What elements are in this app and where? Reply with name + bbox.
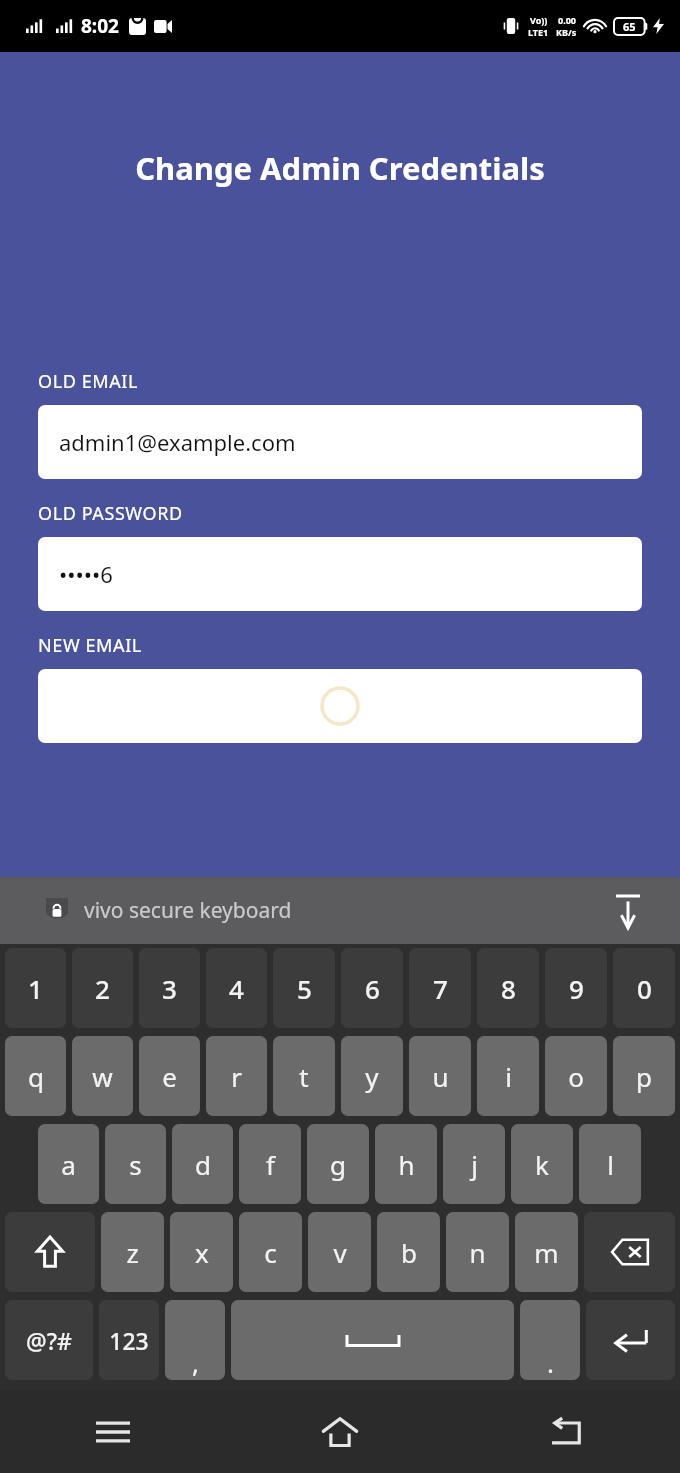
staticText: 4 [229, 971, 244, 1006]
button[interactable]: Hide keyboard [606, 889, 650, 933]
staticText: vivo secure keyboard [84, 896, 292, 925]
button[interactable]: Home [226, 1390, 453, 1473]
staticText: k [535, 1147, 549, 1182]
button[interactable]: 6 [341, 948, 403, 1028]
button[interactable]: . [520, 1300, 580, 1380]
button[interactable]: d [172, 1124, 233, 1204]
staticText: v [333, 1235, 347, 1270]
button[interactable]: l [579, 1124, 641, 1204]
staticText: m [534, 1235, 559, 1270]
staticText: 7 [433, 971, 448, 1006]
button[interactable]: 4 [206, 948, 267, 1028]
button[interactable]: 9 [545, 948, 607, 1028]
staticText: •••••6 [59, 559, 113, 589]
staticText: i [505, 1059, 512, 1094]
button[interactable]: e [139, 1036, 200, 1116]
staticText: Vo)) [530, 14, 548, 26]
button[interactable]: w [72, 1036, 133, 1116]
staticText: , [192, 1345, 199, 1380]
button[interactable]: x [170, 1212, 233, 1292]
button[interactable]: j [443, 1124, 505, 1204]
staticText: Change Admin Credentials [0, 147, 680, 189]
staticText: e [162, 1059, 177, 1094]
button[interactable]: k [511, 1124, 573, 1204]
staticText: a [61, 1147, 76, 1182]
button[interactable]: t [273, 1036, 335, 1116]
staticText: @?# [26, 1325, 72, 1356]
staticText: 8 [501, 971, 516, 1006]
button[interactable]: admin1@example.com [38, 405, 642, 479]
button[interactable]: z [101, 1212, 164, 1292]
staticText: 2 [95, 971, 110, 1006]
button[interactable]: 0 [613, 948, 675, 1028]
button[interactable]: 3 [139, 948, 200, 1028]
staticText: 5 [297, 971, 312, 1006]
staticText: 9 [569, 971, 584, 1006]
staticText: u [432, 1059, 449, 1094]
staticText: j [471, 1147, 478, 1182]
staticText: l [607, 1147, 614, 1182]
staticText: 0.00 [558, 14, 576, 26]
button[interactable]: Space [231, 1300, 514, 1380]
button[interactable]: Shift [5, 1212, 95, 1292]
button[interactable]: 7 [409, 948, 471, 1028]
staticText: 3 [162, 971, 177, 1006]
button[interactable]: @?# [5, 1300, 93, 1380]
button[interactable]: r [206, 1036, 267, 1116]
button[interactable]: Back [453, 1390, 680, 1473]
staticText: n [469, 1235, 486, 1270]
staticText: t [299, 1059, 309, 1094]
staticText: g [330, 1147, 346, 1182]
staticText: d [195, 1147, 211, 1182]
button[interactable]: p [613, 1036, 675, 1116]
staticText: y [365, 1059, 379, 1094]
button[interactable]: •••••6 [38, 537, 642, 611]
staticText: NEW EMAIL [38, 633, 142, 658]
button[interactable]: 1 [5, 948, 66, 1028]
staticText: q [28, 1059, 44, 1094]
button[interactable]: b [377, 1212, 440, 1292]
staticText: 123 [109, 1325, 149, 1356]
staticText: KB/s [556, 26, 577, 38]
staticText: h [398, 1147, 415, 1182]
button[interactable]: s [105, 1124, 166, 1204]
staticText: z [126, 1235, 139, 1270]
button[interactable]: g [307, 1124, 369, 1204]
button[interactable]: i [477, 1036, 539, 1116]
button[interactable]: q [5, 1036, 66, 1116]
button[interactable]: u [409, 1036, 471, 1116]
button[interactable]: 2 [72, 948, 133, 1028]
staticText: p [636, 1059, 652, 1094]
staticText: LTE1 [528, 26, 549, 38]
staticText: admin1@example.com [59, 427, 296, 457]
staticText: s [129, 1147, 142, 1182]
button[interactable]: 8 [477, 948, 539, 1028]
staticText: f [266, 1147, 275, 1182]
button[interactable]: v [308, 1212, 371, 1292]
button[interactable]: Backspace [584, 1212, 675, 1292]
staticText: r [231, 1059, 242, 1094]
button[interactable]: n [446, 1212, 509, 1292]
button[interactable] [38, 669, 642, 743]
button[interactable]: h [375, 1124, 437, 1204]
staticText: 0 [637, 971, 652, 1006]
button[interactable]: Enter [586, 1300, 675, 1380]
button[interactable]: a [38, 1124, 99, 1204]
button[interactable]: y [341, 1036, 403, 1116]
staticText: OLD EMAIL [38, 369, 139, 394]
button[interactable]: o [545, 1036, 607, 1116]
staticText: 1 [28, 971, 43, 1006]
button[interactable]: 123 [99, 1300, 159, 1380]
button[interactable]: 5 [273, 948, 335, 1028]
staticText: w [92, 1059, 113, 1094]
staticText: c [264, 1235, 277, 1270]
button[interactable]: m [515, 1212, 578, 1292]
staticText: 65 [623, 19, 636, 34]
staticText: o [568, 1059, 584, 1094]
button[interactable]: f [239, 1124, 301, 1204]
button[interactable]: Recents [0, 1390, 226, 1473]
button[interactable]: c [239, 1212, 302, 1292]
button[interactable]: , [165, 1300, 225, 1380]
staticText: . [547, 1345, 554, 1380]
staticText: OLD PASSWORD [38, 501, 183, 526]
